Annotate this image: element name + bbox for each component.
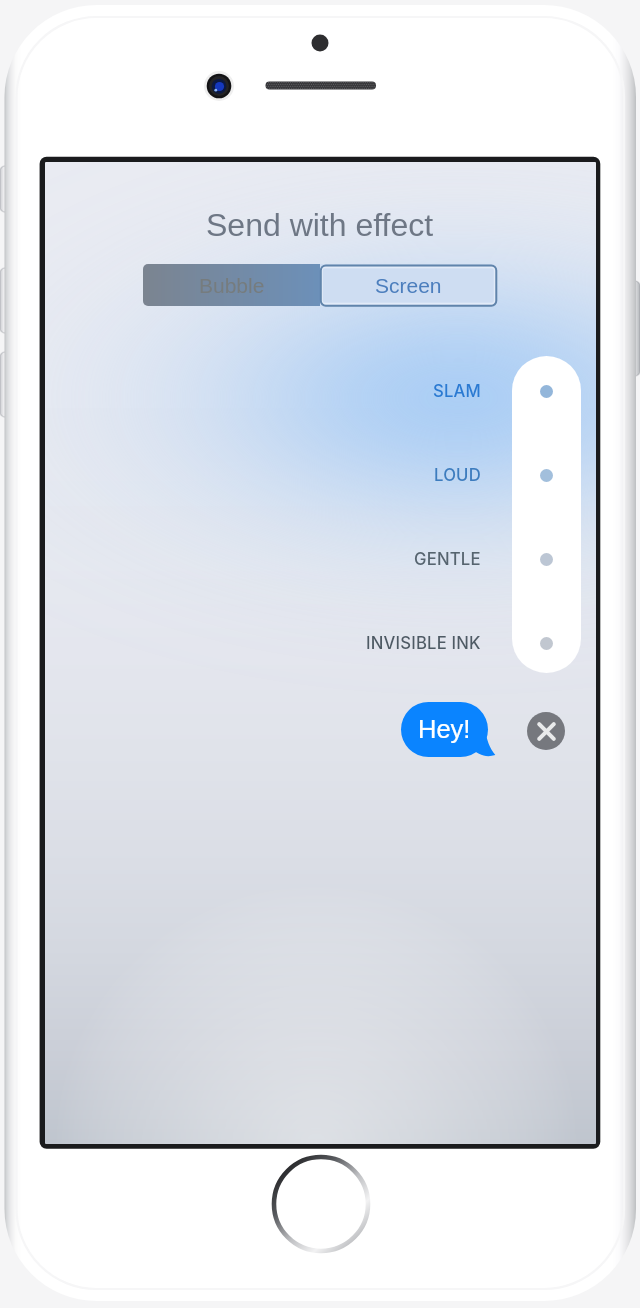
staticText: Hey!: [418, 715, 471, 743]
staticText: INVISIBLE INK: [366, 633, 481, 653]
button[interactable]: LOUD: [330, 454, 563, 496]
staticText: Screen: [375, 274, 442, 297]
staticText: Bubble: [199, 274, 265, 297]
staticText: LOUD: [434, 465, 481, 485]
button[interactable]: Bubble: [143, 264, 320, 306]
button[interactable]: INVISIBLE INK: [330, 622, 563, 664]
button[interactable]: Close: [527, 712, 565, 750]
button[interactable]: SLAM: [330, 370, 563, 412]
button[interactable]: GENTLE: [330, 538, 563, 580]
staticText: Send with effect: [206, 207, 434, 243]
staticText: GENTLE: [414, 549, 481, 569]
staticText: SLAM: [433, 381, 481, 401]
button[interactable]: Screen: [320, 264, 497, 306]
